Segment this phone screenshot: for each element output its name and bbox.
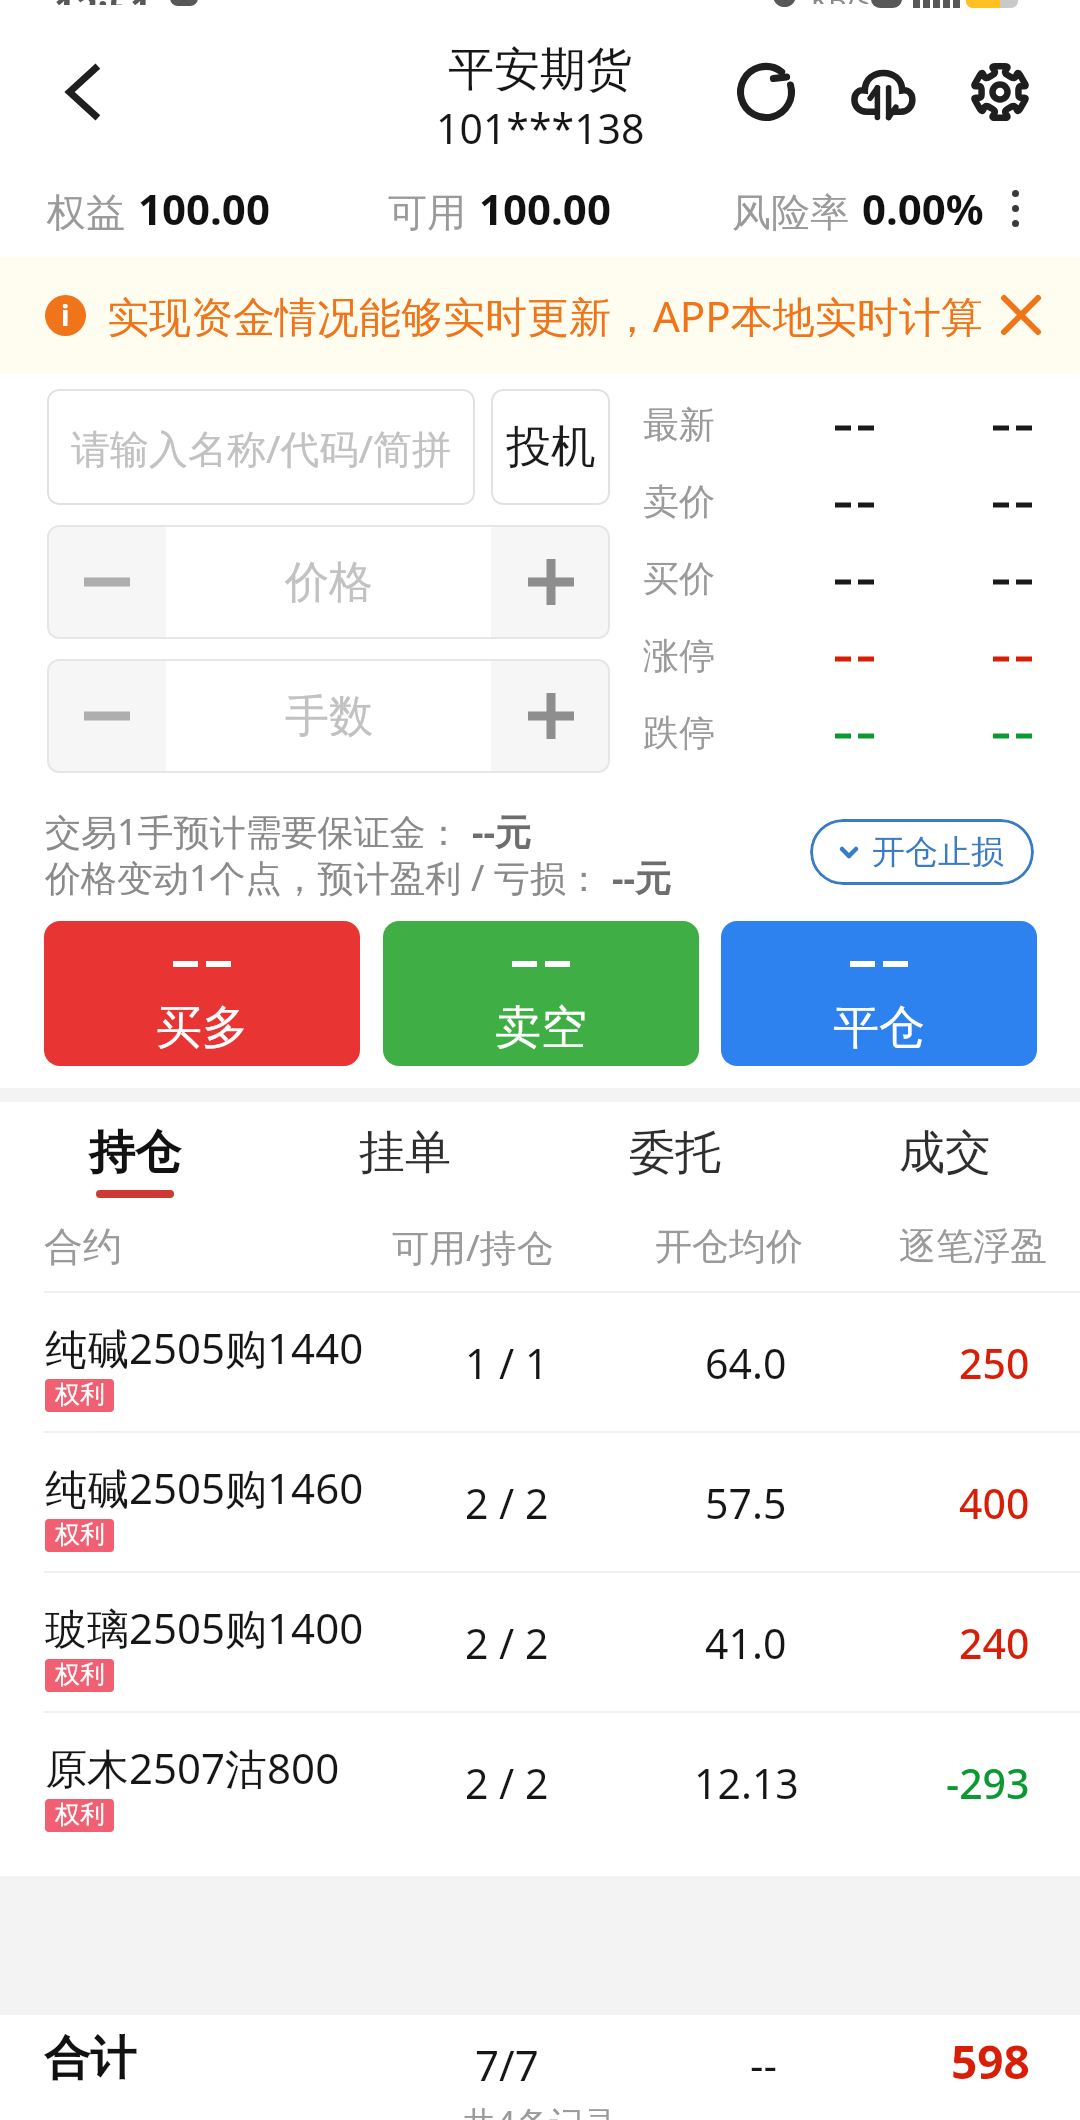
button[interactable]: Decrease 手数 bbox=[47, 659, 166, 773]
staticText: 逐笔浮盈 bbox=[899, 1223, 1047, 1270]
staticText: i bbox=[61, 296, 70, 334]
staticText: 41.0 bbox=[705, 1615, 787, 1671]
staticText: 开仓均价 bbox=[655, 1223, 803, 1270]
staticText: 2 / 2 bbox=[465, 1475, 549, 1531]
staticText: 价格变动1个点，预计盈利 / 亏损： bbox=[45, 853, 602, 902]
staticText: -- bbox=[750, 2036, 778, 2093]
staticText: 250 bbox=[959, 1335, 1030, 1391]
button[interactable]: 投机 bbox=[491, 389, 610, 505]
button[interactable]: 玻璃2505购1400 bbox=[0, 1573, 1080, 1713]
staticText: 0.00% bbox=[862, 180, 984, 237]
button[interactable]: 成交 bbox=[810, 1102, 1080, 1200]
button[interactable]: 原木2507沽800 bbox=[0, 1713, 1080, 1853]
button[interactable]: 平仓 bbox=[721, 921, 1037, 1066]
staticText: 委托 bbox=[629, 1124, 721, 1182]
staticText: 买多 bbox=[156, 999, 248, 1057]
staticText: 100.00 bbox=[138, 180, 270, 237]
staticText: 买价 bbox=[643, 556, 715, 601]
staticText: 598 bbox=[951, 2030, 1030, 2093]
staticText: 卖价 bbox=[643, 479, 715, 524]
staticText: --元 bbox=[612, 853, 672, 902]
staticText: 57.5 bbox=[705, 1475, 787, 1531]
staticText: 开仓止损 bbox=[872, 831, 1004, 873]
button[interactable]: Decrease 价格 bbox=[47, 525, 166, 639]
button[interactable]: 卖空 bbox=[383, 921, 699, 1066]
staticText: 100.00 bbox=[479, 180, 611, 237]
button[interactable]: Back bbox=[28, 37, 138, 147]
staticText: 64.0 bbox=[705, 1335, 787, 1391]
staticText: 卖空 bbox=[495, 999, 587, 1057]
staticText: 共4条记录 bbox=[462, 2100, 618, 2120]
button[interactable]: Refresh bbox=[707, 33, 824, 150]
button[interactable]: 请输入名称/代码/简拼 bbox=[47, 389, 475, 505]
button[interactable]: 挂单 bbox=[270, 1102, 540, 1200]
staticText: 权益 bbox=[47, 188, 125, 237]
staticText: 玻璃2505购1400 bbox=[45, 1599, 364, 1656]
button[interactable]: Increase 手数 bbox=[491, 659, 610, 773]
staticText: 手数 bbox=[285, 689, 373, 744]
staticText: 12:51 bbox=[54, 0, 152, 5]
staticText: 7/7 bbox=[475, 2036, 539, 2093]
staticText: 平安期货 bbox=[448, 41, 632, 99]
staticText: 可用/持仓 bbox=[392, 1221, 554, 1272]
staticText: 跌停 bbox=[643, 710, 715, 755]
staticText: 原木2507沽800 bbox=[45, 1739, 340, 1796]
staticText: 风险率 bbox=[732, 188, 849, 237]
button[interactable]: 开仓止损 bbox=[810, 819, 1034, 885]
staticText: 挂单 bbox=[359, 1124, 451, 1182]
staticText: 交易1手预计需要保证金： bbox=[45, 807, 462, 856]
staticText: 400 bbox=[959, 1475, 1030, 1531]
staticText: 合计 bbox=[44, 2030, 136, 2088]
button[interactable]: Close bbox=[989, 283, 1053, 347]
staticText: 平仓 bbox=[833, 999, 925, 1057]
button[interactable]: 手数 bbox=[166, 659, 491, 773]
staticText: 2 / 2 bbox=[465, 1755, 549, 1811]
staticText: 纯碱2505购1440 bbox=[45, 1319, 364, 1376]
staticText: --元 bbox=[472, 807, 532, 856]
staticText: 请输入名称/代码/简拼 bbox=[71, 421, 452, 474]
button[interactable]: 纯碱2505购1440 bbox=[0, 1293, 1080, 1433]
staticText: 价格 bbox=[285, 555, 373, 610]
staticText: 12.13 bbox=[694, 1755, 799, 1811]
staticText: 240 bbox=[959, 1615, 1030, 1671]
staticText: 权利 bbox=[55, 1659, 105, 1690]
button[interactable]: Cloud sync bbox=[824, 33, 941, 150]
staticText: 合约 bbox=[44, 1222, 122, 1271]
button[interactable]: Settings bbox=[941, 33, 1058, 150]
button[interactable]: 委托 bbox=[540, 1102, 810, 1200]
staticText: KB/s bbox=[811, 0, 871, 4]
staticText: 实现资金情况能够实时更新，APP本地实时计算 bbox=[107, 287, 983, 344]
staticText: 投机 bbox=[506, 419, 596, 476]
staticText: -293 bbox=[946, 1755, 1030, 1811]
button[interactable]: 买多 bbox=[44, 921, 360, 1066]
staticText: 成交 bbox=[899, 1124, 991, 1182]
staticText: 持仓 bbox=[89, 1124, 181, 1182]
button[interactable]: 价格 bbox=[166, 525, 491, 639]
staticText: 1 / 1 bbox=[465, 1335, 549, 1391]
staticText: 涨停 bbox=[643, 633, 715, 678]
staticText: 最新 bbox=[643, 402, 715, 447]
staticText: 权利 bbox=[55, 1519, 105, 1550]
button[interactable]: 纯碱2505购1460 bbox=[0, 1433, 1080, 1573]
staticText: 权利 bbox=[55, 1379, 105, 1410]
button[interactable]: 持仓 bbox=[0, 1102, 270, 1200]
staticText: 纯碱2505购1460 bbox=[45, 1459, 364, 1516]
staticText: 2 / 2 bbox=[465, 1615, 549, 1671]
staticText: 可用 bbox=[388, 188, 466, 237]
staticText: 101***138 bbox=[436, 100, 645, 156]
staticText: 权利 bbox=[55, 1799, 105, 1830]
button[interactable]: Increase 价格 bbox=[491, 525, 610, 639]
button[interactable]: More options bbox=[980, 173, 1050, 243]
